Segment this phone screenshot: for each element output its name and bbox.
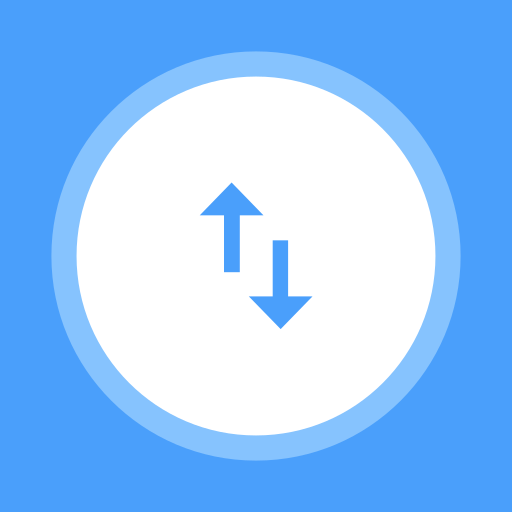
button[interactable]: Transfer [0,0,512,512]
